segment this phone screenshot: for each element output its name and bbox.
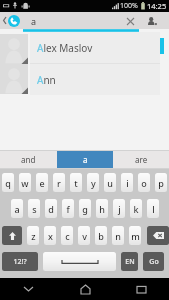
staticText: t xyxy=(74,177,78,189)
button[interactable]: u xyxy=(104,173,116,192)
button[interactable]: EN xyxy=(121,252,138,271)
staticText: z xyxy=(31,230,36,242)
button[interactable]: 12!? xyxy=(2,252,38,271)
staticText: h xyxy=(99,203,105,215)
staticText: Go xyxy=(149,257,159,267)
button[interactable]: c xyxy=(61,226,73,245)
staticText: 14:25 xyxy=(147,1,167,11)
button[interactable]: j xyxy=(113,199,125,218)
button[interactable]: Go xyxy=(143,252,164,271)
button[interactable]: w xyxy=(19,173,31,192)
staticText: x xyxy=(48,230,53,242)
button[interactable]: z xyxy=(27,226,39,245)
staticText: p xyxy=(158,177,164,189)
button[interactable]: Ann xyxy=(30,64,160,95)
button[interactable] xyxy=(0,64,169,94)
button[interactable] xyxy=(0,34,169,64)
button[interactable]: b xyxy=(95,226,107,245)
button[interactable] xyxy=(147,226,169,245)
button[interactable]: q xyxy=(2,173,14,192)
staticText: n xyxy=(115,230,121,242)
button[interactable]: h xyxy=(96,199,108,218)
staticText: e xyxy=(39,177,45,189)
staticText: r xyxy=(57,177,61,189)
staticText: l xyxy=(152,203,155,215)
staticText: m xyxy=(131,230,140,242)
button[interactable]: Home xyxy=(57,278,113,300)
staticText: f xyxy=(66,203,70,215)
button[interactable]: n xyxy=(112,226,124,245)
button[interactable]: i xyxy=(121,173,133,192)
staticText: are xyxy=(135,154,148,165)
staticText: d xyxy=(48,203,54,215)
button[interactable]: f xyxy=(62,199,74,218)
button[interactable]: y xyxy=(87,173,99,192)
button[interactable]: and xyxy=(0,150,57,169)
button[interactable]: Back xyxy=(0,278,57,300)
button[interactable] xyxy=(2,226,22,245)
staticText: g xyxy=(82,203,88,215)
staticText: s xyxy=(32,203,37,215)
staticText: q xyxy=(5,177,11,189)
staticText: c xyxy=(65,230,70,242)
button[interactable]: Recents xyxy=(113,278,169,300)
button[interactable]: t xyxy=(70,173,82,192)
button[interactable]: x xyxy=(44,226,56,245)
button[interactable]: a xyxy=(57,150,113,169)
button[interactable]: l xyxy=(147,199,159,218)
staticText: b xyxy=(98,230,104,242)
button[interactable]: a xyxy=(11,199,23,218)
button[interactable]: Back xyxy=(0,12,8,29)
staticText: 12!? xyxy=(13,257,27,267)
button[interactable]: d xyxy=(45,199,57,218)
button[interactable]: e xyxy=(36,173,48,192)
staticText: and xyxy=(21,154,36,165)
staticText: EN xyxy=(125,257,135,267)
button[interactable]: Add contact xyxy=(144,13,160,29)
staticText: a xyxy=(31,15,37,27)
staticText: v xyxy=(82,230,87,242)
button[interactable]: Dialer xyxy=(8,15,20,27)
button[interactable]: v xyxy=(78,226,90,245)
button[interactable]: Clear xyxy=(122,13,138,29)
staticText: Alex Maslov xyxy=(37,41,93,55)
staticText: k xyxy=(133,203,139,215)
staticText: y xyxy=(91,177,96,189)
staticText: 100% xyxy=(120,1,138,11)
button[interactable]: are xyxy=(113,150,169,169)
button[interactable] xyxy=(43,252,116,271)
staticText: a xyxy=(14,203,20,215)
staticText: a xyxy=(83,154,88,165)
button[interactable]: o xyxy=(138,173,150,192)
staticText: i xyxy=(126,177,129,189)
staticText: w xyxy=(21,177,29,189)
button[interactable]: g xyxy=(79,199,91,218)
button[interactable]: Alex Maslov xyxy=(30,32,160,63)
staticText: j xyxy=(118,203,121,215)
staticText: Ann xyxy=(37,73,56,87)
staticText: o xyxy=(141,177,147,189)
button[interactable]: k xyxy=(130,199,142,218)
button[interactable]: r xyxy=(53,173,65,192)
button[interactable]: p xyxy=(155,173,167,192)
button[interactable]: s xyxy=(28,199,40,218)
staticText: u xyxy=(107,177,113,189)
button[interactable]: m xyxy=(129,226,141,245)
